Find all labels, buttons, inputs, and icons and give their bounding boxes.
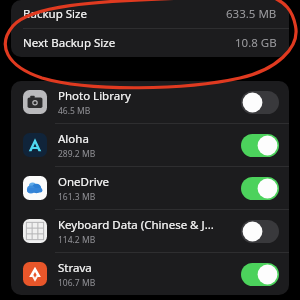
staticText: 10.8 GB	[235, 35, 277, 51]
staticText: 46.5 MB	[58, 105, 91, 117]
staticText: Keyboard Data (Chinese & J…	[58, 217, 214, 233]
button[interactable]: Photo Library	[11, 81, 289, 123]
staticText: 106.7 MB	[58, 277, 96, 289]
staticText: 633.5 MB	[226, 6, 277, 22]
button[interactable]: Off	[241, 91, 279, 114]
button[interactable]: Strava	[11, 253, 289, 295]
staticText: Aloha	[58, 131, 89, 147]
staticText: Strava	[58, 260, 92, 276]
staticText: Backup Size	[23, 6, 226, 22]
staticText: Next Backup Size	[23, 35, 235, 51]
button[interactable]: On	[241, 177, 279, 200]
button[interactable]: Next Backup Size	[11, 29, 289, 57]
button[interactable]: Backup Size	[11, 0, 289, 28]
button[interactable]: On	[241, 263, 279, 286]
staticText: 289.2 MB	[58, 148, 96, 160]
staticText: Photo Library	[58, 88, 131, 104]
button[interactable]: On	[241, 134, 279, 157]
staticText: OneDrive	[58, 174, 110, 190]
button[interactable]: Aloha	[11, 124, 289, 166]
button[interactable]: Off	[241, 220, 279, 243]
staticText: 114.2 MB	[58, 234, 96, 246]
button[interactable]: Keyboard Data (Chinese & J…	[11, 210, 289, 252]
button[interactable]: OneDrive	[11, 167, 289, 209]
staticText: 161.3 MB	[58, 191, 96, 203]
